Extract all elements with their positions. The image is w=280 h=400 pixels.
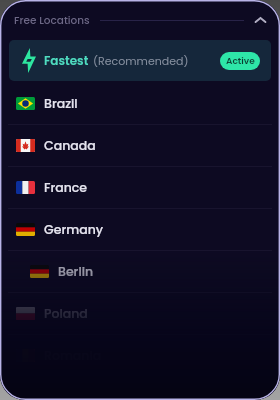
staticText: Berlin <box>58 263 94 280</box>
button[interactable]: Free Locations <box>0 5 280 35</box>
button[interactable]: Canada <box>0 125 280 166</box>
button[interactable]: Romania <box>0 335 280 376</box>
button[interactable]: Poland <box>0 293 280 334</box>
button[interactable]: Active <box>220 52 260 70</box>
staticText: Brazil <box>44 95 78 112</box>
staticText: Germany <box>44 221 104 238</box>
staticText: Fastest <box>44 52 89 69</box>
button[interactable]: Fastest <box>9 40 271 81</box>
staticText: Active <box>226 55 255 68</box>
button[interactable]: Brazil <box>0 83 280 124</box>
staticText: Canada <box>44 137 96 154</box>
staticText: (Recommended) <box>93 53 189 68</box>
button[interactable]: France <box>0 167 280 208</box>
staticText: Poland <box>44 305 88 322</box>
button[interactable]: Berlin <box>0 251 280 292</box>
other: Collapse Free Locations <box>254 14 267 27</box>
button[interactable]: Germany <box>0 209 280 250</box>
staticText: France <box>44 179 88 196</box>
staticText: Free Locations <box>14 13 90 28</box>
